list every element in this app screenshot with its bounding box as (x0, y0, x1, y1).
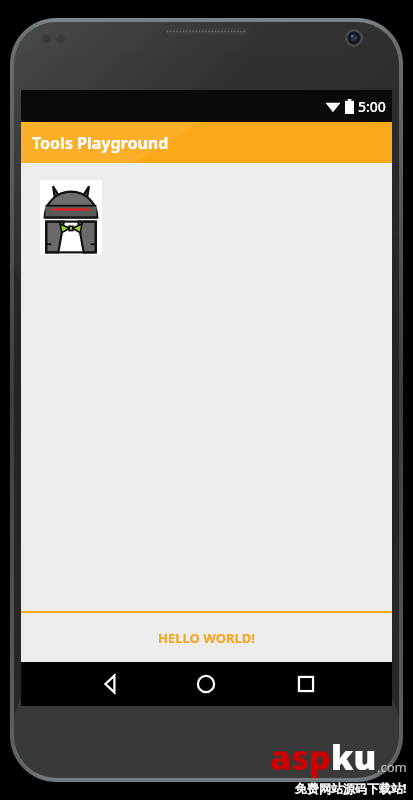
staticText: .com (377, 758, 407, 776)
staticText: HELLO WORLD! (158, 629, 255, 647)
button[interactable]: HELLO WORLD! (21, 613, 392, 662)
button[interactable]: Recent apps (284, 662, 328, 706)
staticText: 5:00 (358, 97, 386, 116)
staticText: Tools Playground (32, 132, 169, 154)
button[interactable]: Back (84, 662, 128, 706)
button[interactable]: Tools Playground (21, 122, 392, 163)
staticText: ku (331, 734, 377, 780)
button[interactable]: Home (184, 662, 228, 706)
staticText: asp (270, 734, 331, 780)
staticText: 免费网站源码下载站! (295, 780, 407, 796)
button[interactable]: Android ninja app icon (40, 180, 102, 255)
